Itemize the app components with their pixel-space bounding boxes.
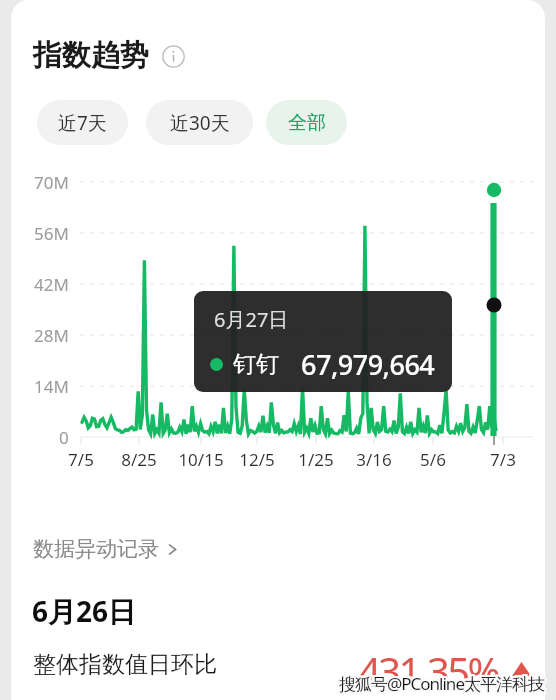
staticText: 整体指数值日环比 — [33, 650, 217, 679]
staticText: 搜狐号@PConline太平洋科技 — [339, 674, 544, 697]
staticText: 数据异动记录 — [33, 536, 159, 562]
staticText: 10/15 — [178, 448, 224, 471]
staticText: 搜狐号@PConline太平洋科技 — [338, 672, 543, 695]
staticText: 搜狐号@PConline太平洋科技 — [338, 674, 543, 697]
staticText: 指数趋势 — [33, 37, 149, 74]
staticText: 近30天 — [170, 110, 230, 136]
staticText: 搜狐号@PConline太平洋科技 — [339, 670, 544, 693]
staticText: 搜狐号@PConline太平洋科技 — [340, 674, 545, 697]
staticText: 搜狐号@PConline太平洋科技 — [340, 670, 545, 693]
staticText: 0 — [59, 426, 69, 449]
staticText: 70M — [34, 171, 69, 194]
staticText: 搜狐号@PConline太平洋科技 — [338, 670, 543, 693]
button[interactable]: 全部 — [266, 100, 347, 145]
staticText: 搜狐号@PConline太平洋科技 — [337, 674, 542, 697]
staticText: 搜狐号@PConline太平洋科技 — [339, 672, 544, 695]
button[interactable]: Info — [161, 44, 185, 68]
staticText: 搜狐号@PConline太平洋科技 — [339, 671, 544, 694]
staticText: 搜狐号@PConline太平洋科技 — [340, 671, 545, 694]
staticText: 搜狐号@PConline太平洋科技 — [341, 670, 546, 693]
staticText: 5/6 — [420, 448, 446, 471]
staticText: 8/25 — [121, 448, 157, 471]
staticText: 全部 — [288, 111, 326, 135]
staticText: 56M — [34, 222, 69, 245]
staticText: 近7天 — [58, 110, 107, 136]
staticText: 搜狐号@PConline太平洋科技 — [340, 672, 545, 695]
staticText: 搜狐号@PConline太平洋科技 — [337, 671, 542, 694]
staticText: 搜狐号@PConline太平洋科技 — [337, 670, 542, 693]
staticText: 14M — [34, 375, 69, 398]
staticText: 搜狐号@PConline太平洋科技 — [339, 673, 544, 696]
staticText: 搜狐号@PConline太平洋科技 — [338, 673, 543, 696]
button[interactable]: 近30天 — [146, 100, 253, 145]
staticText: 6月27日 — [214, 306, 289, 333]
staticText: 搜狐号@PConline太平洋科技 — [337, 672, 542, 695]
staticText: 搜狐号@PConline太平洋科技 — [341, 674, 546, 697]
staticText: 3/16 — [356, 448, 392, 471]
staticText: 1/25 — [298, 448, 334, 471]
staticText: 7/5 — [68, 448, 94, 471]
staticText: 搜狐号@PConline太平洋科技 — [340, 673, 545, 696]
button[interactable]: 指数趋势 — [33, 37, 185, 74]
staticText: 搜狐号@PConline太平洋科技 — [341, 671, 546, 694]
staticText: 6月26日 — [32, 592, 137, 630]
staticText: 42M — [34, 273, 69, 296]
staticText: 12/5 — [239, 448, 275, 471]
staticText: 搜狐号@PConline太平洋科技 — [337, 673, 542, 696]
staticText: 431.35% — [358, 644, 499, 698]
staticText: 7/3 — [490, 448, 516, 471]
button[interactable]: 近7天 — [37, 100, 128, 145]
staticText: 搜狐号@PConline太平洋科技 — [338, 671, 543, 694]
button[interactable]: 数据异动记录 — [33, 536, 182, 562]
staticText: 67,979,664 — [301, 346, 435, 383]
staticText: 搜狐号@PConline太平洋科技 — [341, 673, 546, 696]
staticText: 钉钉 — [233, 350, 279, 379]
staticText: 搜狐号@PConline太平洋科技 — [341, 672, 546, 695]
staticText: 28M — [34, 324, 69, 347]
